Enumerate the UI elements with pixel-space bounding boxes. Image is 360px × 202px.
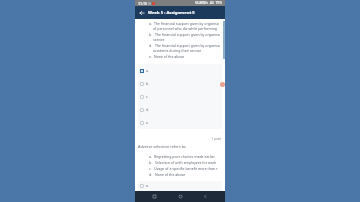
staticText: d.	[146, 108, 149, 112]
button[interactable]: Home	[175, 191, 186, 202]
staticText: service	[153, 37, 165, 42]
staticText: Selection of unfit employees for work	[155, 160, 217, 165]
staticText: None of the above	[154, 54, 185, 59]
staticText: None of the above	[155, 172, 186, 177]
button[interactable]: b.	[138, 77, 222, 90]
staticText: a.	[146, 69, 149, 73]
staticText: a.	[149, 21, 152, 26]
button[interactable]: e.	[138, 116, 222, 129]
staticText: d.	[149, 43, 153, 48]
staticText: b.	[149, 160, 153, 165]
button[interactable]: a.	[138, 64, 222, 77]
button[interactable]: Recents	[149, 191, 160, 202]
staticText: d.	[149, 172, 153, 177]
staticText: 1 point	[212, 137, 222, 141]
button[interactable]: c.	[138, 90, 222, 103]
button[interactable]: Back	[135, 6, 148, 19]
staticText: Adverse selection refers to:	[138, 144, 187, 149]
staticText: 56.8KB/s 4G 79%	[195, 1, 222, 5]
staticText: of personnel who die while performing	[153, 26, 218, 31]
staticText: Usage of a specific benefit more than r	[154, 166, 218, 171]
staticText: b.	[149, 32, 153, 37]
button[interactable]: d.	[138, 103, 222, 116]
staticText: The financial support given by organisa	[155, 32, 220, 37]
staticText: Week 5 : Assignment 5	[148, 10, 195, 16]
staticText: e.	[149, 54, 152, 59]
staticText: e.	[146, 121, 149, 125]
staticText: c.	[146, 95, 149, 99]
staticText: 11:15	[138, 1, 147, 6]
staticText: a.	[146, 184, 149, 188]
staticText: a.	[149, 154, 152, 159]
button[interactable]: a.	[138, 181, 222, 191]
staticText: The financial support given by organisa	[155, 43, 220, 48]
staticText: c.	[149, 166, 152, 171]
staticText: The financial support given by organisa	[154, 21, 219, 26]
button[interactable]: Back	[200, 191, 211, 202]
staticText: b.	[146, 82, 149, 86]
staticText: Regretting poor choices made earlier	[154, 154, 216, 159]
staticText: accidents during their service	[153, 48, 202, 53]
